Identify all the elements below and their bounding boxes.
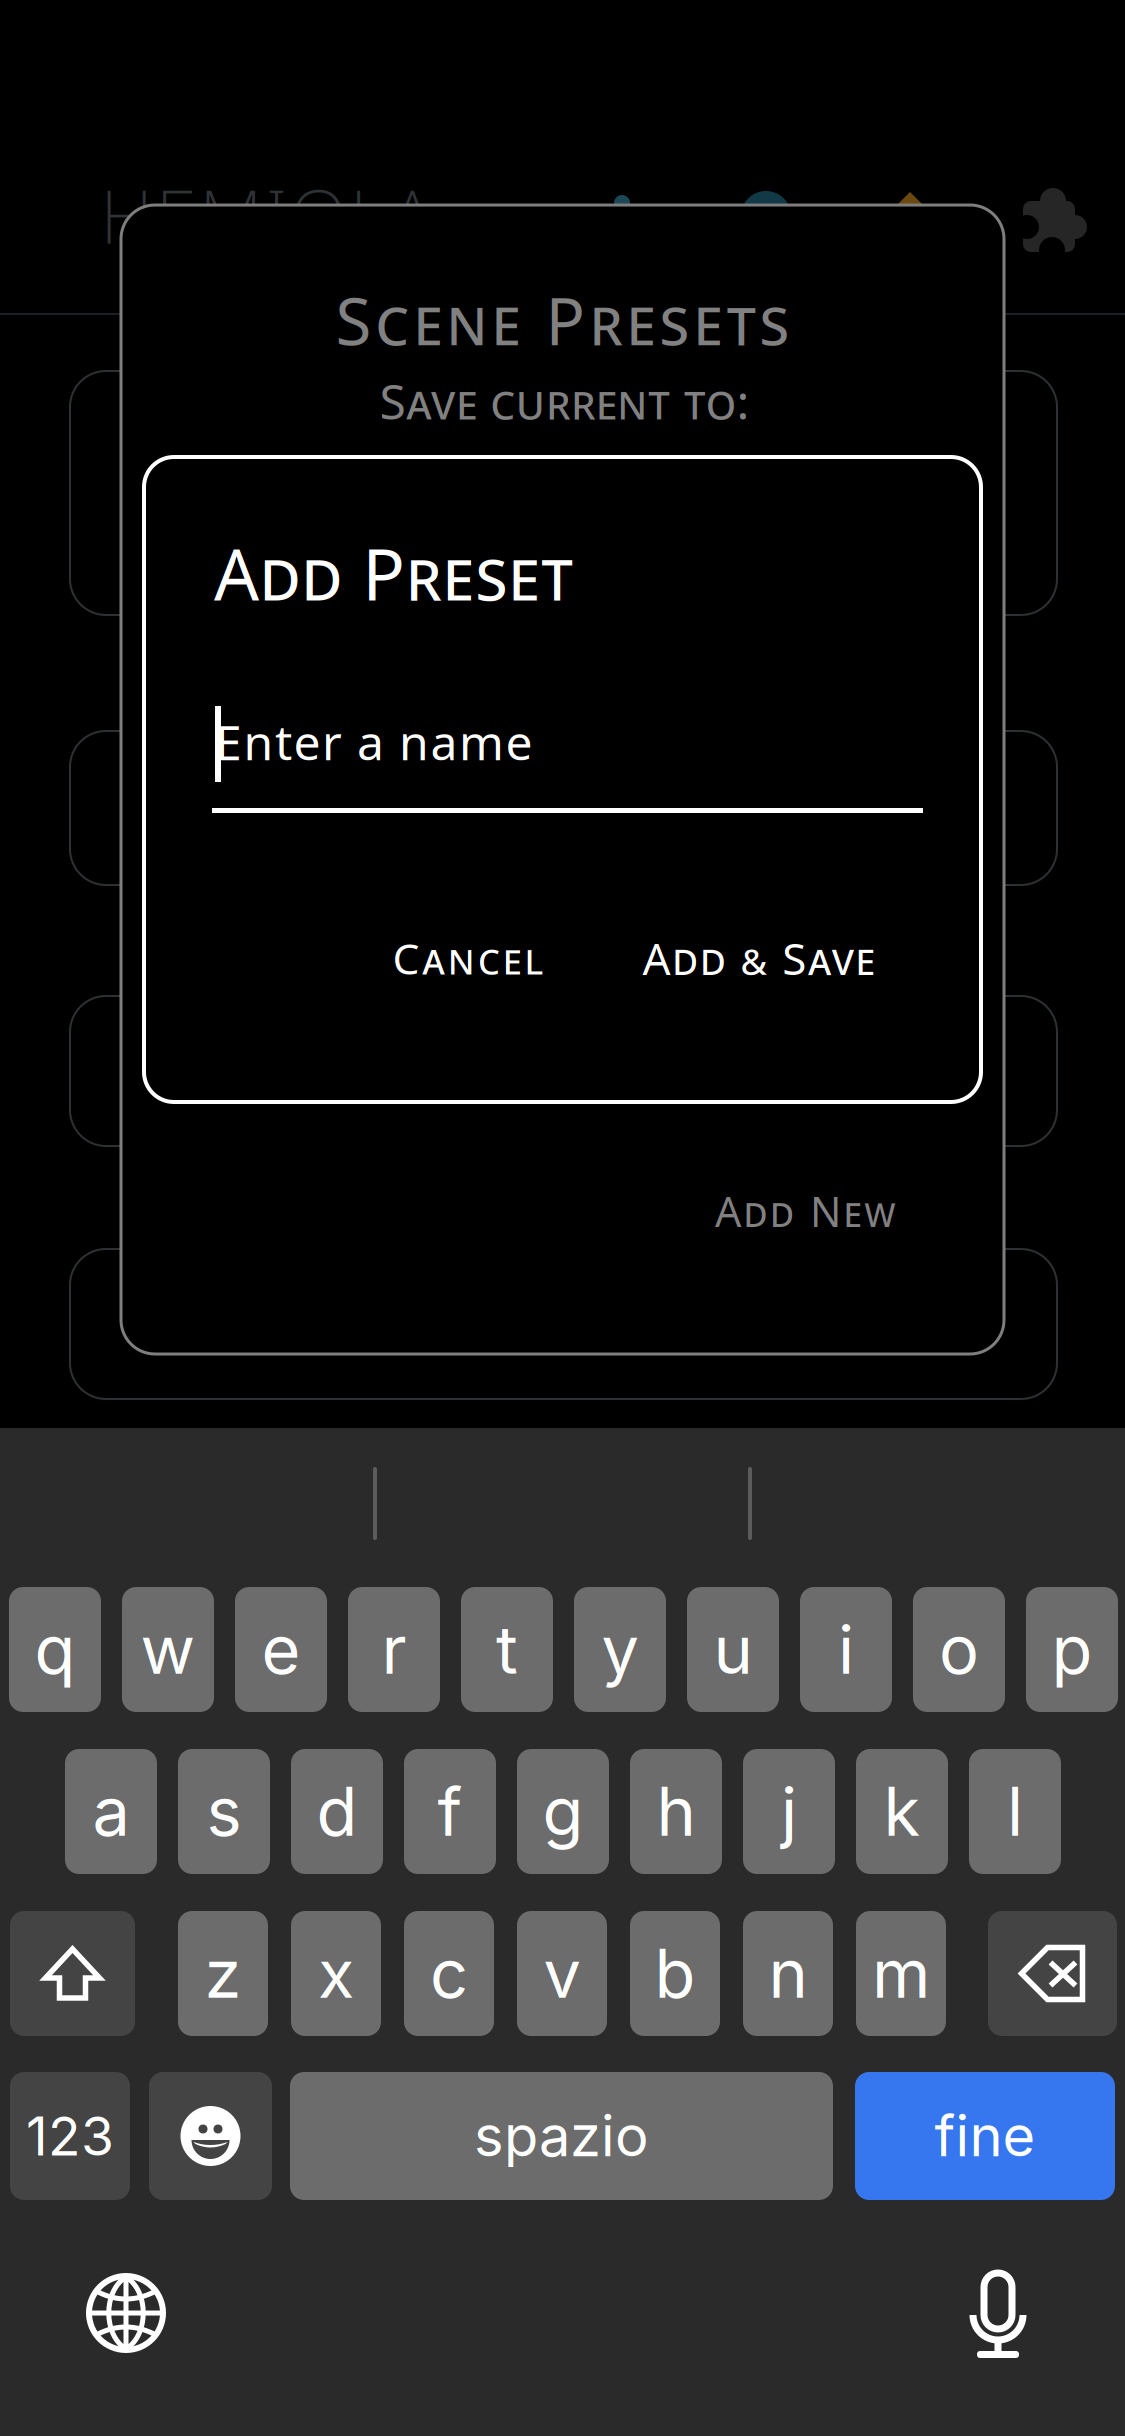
staticText: n	[768, 1933, 807, 2014]
staticText: s	[206, 1771, 241, 1852]
button[interactable]: f	[404, 1749, 496, 1874]
button[interactable]: 123	[10, 2072, 130, 2200]
staticText: Scene Presets	[335, 275, 789, 364]
button[interactable]: i	[800, 1587, 892, 1712]
staticText: p	[1051, 1609, 1092, 1690]
staticText: 123	[26, 2104, 114, 2168]
staticText: e	[261, 1609, 300, 1690]
button[interactable]: k	[856, 1749, 948, 1874]
button[interactable]: l	[969, 1749, 1061, 1874]
staticText: r	[381, 1609, 406, 1690]
staticText: j	[781, 1771, 797, 1852]
staticText: o	[939, 1609, 979, 1690]
button[interactable]: Emoji	[149, 2072, 272, 2200]
staticText: v	[543, 1933, 580, 2014]
staticText: Save current to:	[379, 368, 749, 434]
staticText: d	[316, 1771, 357, 1852]
button[interactable]: c	[404, 1911, 494, 2036]
staticText: k	[883, 1771, 920, 1852]
button[interactable]: o	[913, 1587, 1005, 1712]
staticText: HEMIOLA	[100, 164, 434, 266]
staticText: c	[430, 1933, 468, 2014]
staticText: x	[318, 1933, 354, 2014]
staticText: Cancel	[392, 929, 543, 987]
button[interactable]: n	[743, 1911, 833, 2036]
button[interactable]: Add New	[616, 1179, 896, 1243]
button[interactable]: Add & Save	[619, 922, 899, 994]
staticText: f	[437, 1771, 462, 1852]
staticText: z	[204, 1933, 241, 2014]
staticText: b	[654, 1933, 695, 2014]
button[interactable]: w	[122, 1587, 214, 1712]
staticText: q	[34, 1609, 75, 1690]
staticText: g	[542, 1771, 583, 1852]
button[interactable]: y	[574, 1587, 666, 1712]
staticText: Add Preset	[214, 525, 573, 621]
button[interactable]: Delete	[988, 1911, 1117, 2036]
staticText: m	[872, 1933, 930, 2014]
button[interactable]: spazio	[290, 2072, 833, 2200]
button[interactable]: z	[178, 1911, 268, 2036]
staticText: Enter a name	[215, 709, 532, 774]
button[interactable]: s	[178, 1749, 270, 1874]
button[interactable]: p	[1026, 1587, 1118, 1712]
button[interactable]: d	[291, 1749, 383, 1874]
staticText: t	[496, 1609, 518, 1690]
button[interactable]: u	[687, 1587, 779, 1712]
button[interactable]: b	[630, 1911, 720, 2036]
staticText: Add & Save	[642, 928, 876, 988]
button[interactable]: e	[235, 1587, 327, 1712]
staticText: Add New	[715, 1183, 896, 1239]
staticText: h	[656, 1771, 695, 1852]
button[interactable]: j	[743, 1749, 835, 1874]
button[interactable]: a	[65, 1749, 157, 1874]
staticText: w	[140, 1609, 195, 1690]
button[interactable]: Dictation	[970, 2273, 1026, 2358]
staticText: u	[713, 1609, 752, 1690]
button[interactable]: Cancel	[363, 922, 573, 994]
staticText: spazio	[474, 2102, 649, 2170]
button[interactable]: fine	[855, 2072, 1115, 2200]
staticText: l	[1007, 1771, 1023, 1852]
button[interactable]: q	[9, 1587, 101, 1712]
staticText: fine	[934, 2102, 1035, 2170]
staticText: y	[601, 1609, 638, 1690]
button[interactable]: g	[517, 1749, 609, 1874]
button[interactable]: Next keyboard	[89, 2276, 163, 2350]
button[interactable]: r	[348, 1587, 440, 1712]
staticText: i	[838, 1609, 854, 1690]
button[interactable]: Shift	[10, 1911, 135, 2036]
button[interactable]: t	[461, 1587, 553, 1712]
button[interactable]: h	[630, 1749, 722, 1874]
button[interactable]: v	[517, 1911, 607, 2036]
staticText: a	[92, 1771, 129, 1852]
button[interactable]: x	[291, 1911, 381, 2036]
button[interactable]: m	[856, 1911, 946, 2036]
